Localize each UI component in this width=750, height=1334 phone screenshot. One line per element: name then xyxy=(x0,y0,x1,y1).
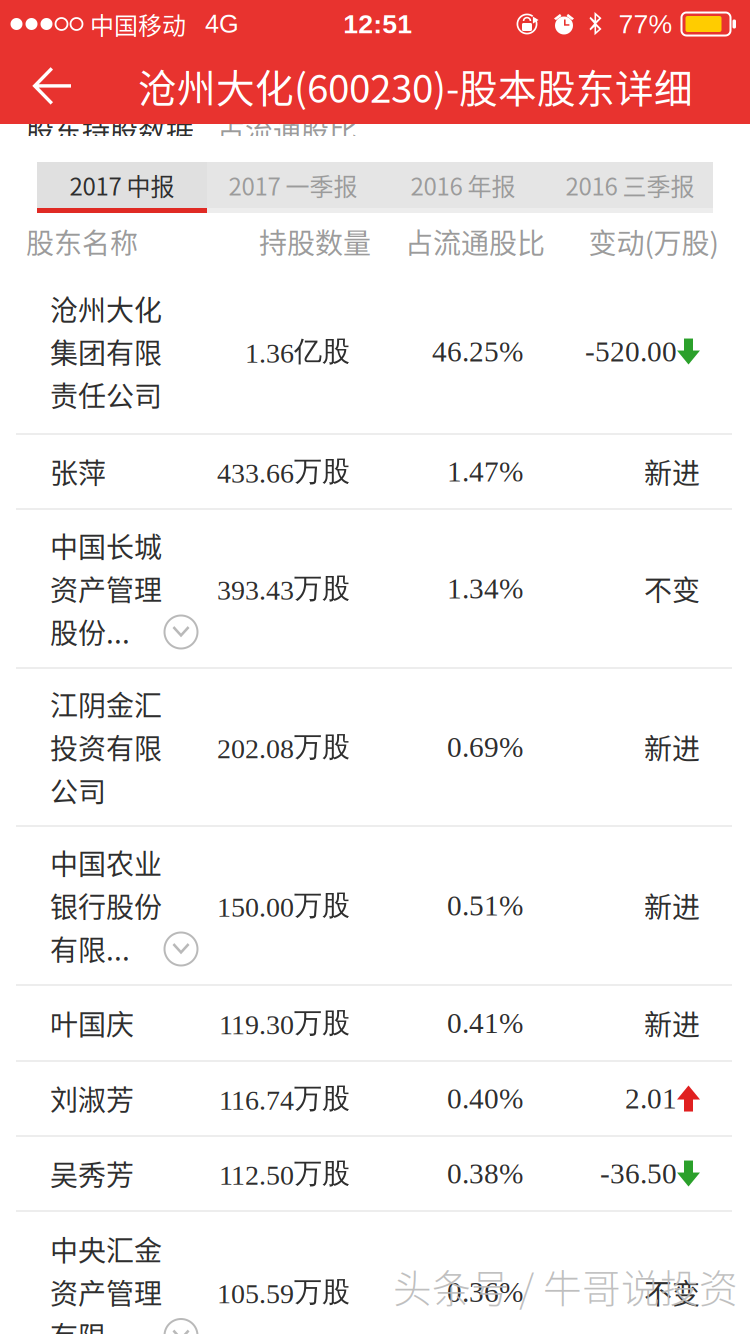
staticText: 112.50万股 xyxy=(219,1156,350,1191)
staticText: 有限... xyxy=(50,1315,130,1334)
staticText: 刘淑芳 xyxy=(50,1078,134,1119)
staticText: 433.66万股 xyxy=(217,454,350,489)
staticText: 沧州大化(600230)-股本股东详细 xyxy=(138,58,693,114)
staticText: -520.00 xyxy=(585,335,677,368)
staticText: 2017 中报 xyxy=(69,168,174,202)
staticText: 中央汇金 xyxy=(50,1229,162,1269)
staticText: 持股数量 xyxy=(259,221,371,262)
staticText: 公司 xyxy=(50,770,106,810)
staticText: 1.47% xyxy=(447,455,523,488)
staticText: 2016 年报 xyxy=(410,168,515,202)
staticText: 116.74万股 xyxy=(219,1081,350,1116)
button[interactable]: Back xyxy=(0,48,104,124)
staticText: 责任公司 xyxy=(50,374,162,415)
staticText: 0.41% xyxy=(447,1007,523,1039)
staticText: 中国农业 xyxy=(50,842,162,883)
staticText: 沧州大化 xyxy=(50,288,162,329)
staticText: 150.00万股 xyxy=(217,888,350,923)
staticText: 资产管理 xyxy=(50,1272,162,1312)
staticText: 投资有限 xyxy=(50,727,162,767)
staticText: 不变 xyxy=(644,1272,700,1312)
staticText: 吴秀芳 xyxy=(50,1153,134,1194)
staticText: 0.51% xyxy=(447,889,523,922)
button[interactable]: 2017 中报 xyxy=(37,162,207,213)
staticText: 46.25% xyxy=(432,335,523,368)
staticText: -36.50 xyxy=(600,1157,677,1190)
staticText: 头条号 / 牛哥说投资 xyxy=(393,1258,738,1314)
staticText: 1.36亿股 xyxy=(245,334,350,369)
staticText: 0.69% xyxy=(447,731,523,763)
button[interactable]: 刘淑芳 xyxy=(0,1062,750,1135)
staticText: 江阴金汇 xyxy=(50,684,162,724)
button[interactable]: 中央汇金 xyxy=(0,1212,750,1334)
staticText: 2017 一季报 xyxy=(228,168,357,202)
button[interactable]: 2017 一季报 xyxy=(207,162,379,213)
button[interactable]: 张萍 xyxy=(0,435,750,508)
staticText: 占流通股比 xyxy=(217,109,357,149)
button[interactable]: 2016 三季报 xyxy=(547,162,713,213)
staticText: 股东名称 xyxy=(26,221,138,262)
button[interactable]: 中国长城 xyxy=(0,510,750,667)
staticText: 张萍 xyxy=(50,451,106,492)
staticText: 叶国庆 xyxy=(50,1003,134,1043)
staticText: 集团有限 xyxy=(50,331,162,372)
staticText: 393.43万股 xyxy=(217,571,350,606)
staticText: 新进 xyxy=(644,451,700,492)
staticText: 股东持股数据 xyxy=(26,109,194,149)
staticText: 12:51 xyxy=(343,9,412,39)
button[interactable]: 2016 年报 xyxy=(379,162,547,213)
staticText: 股份... xyxy=(50,611,130,652)
staticText: 资产管理 xyxy=(50,568,162,609)
staticText: 4G xyxy=(205,10,239,38)
staticText: 119.30万股 xyxy=(219,1005,350,1041)
staticText: 新进 xyxy=(644,885,700,926)
staticText: 新进 xyxy=(644,1003,700,1043)
staticText: 占流通股比 xyxy=(405,221,545,262)
button[interactable]: 中国农业 xyxy=(0,827,750,984)
staticText: 银行股份 xyxy=(50,885,162,926)
button[interactable]: 吴秀芳 xyxy=(0,1137,750,1210)
staticText: 77% xyxy=(618,9,672,39)
staticText: 变动(万股) xyxy=(588,221,718,262)
button[interactable]: 沧州大化 xyxy=(0,270,750,433)
staticText: 1.34% xyxy=(447,572,523,605)
staticText: 不变 xyxy=(644,568,700,609)
staticText: 105.59万股 xyxy=(217,1274,350,1310)
staticText: 中国移动 xyxy=(90,7,186,41)
staticText: 2016 三季报 xyxy=(565,168,694,202)
staticText: 202.08万股 xyxy=(217,729,350,765)
staticText: 0.38% xyxy=(447,1157,523,1190)
staticText: 新进 xyxy=(644,727,700,767)
staticText: 0.36% xyxy=(447,1276,523,1308)
staticText: 中国长城 xyxy=(50,525,162,566)
button[interactable]: 叶国庆 xyxy=(0,986,750,1060)
staticText: 0.40% xyxy=(447,1082,523,1115)
staticText: 2.01 xyxy=(625,1082,677,1115)
button[interactable]: 江阴金汇 xyxy=(0,669,750,825)
staticText: 有限... xyxy=(50,928,130,969)
